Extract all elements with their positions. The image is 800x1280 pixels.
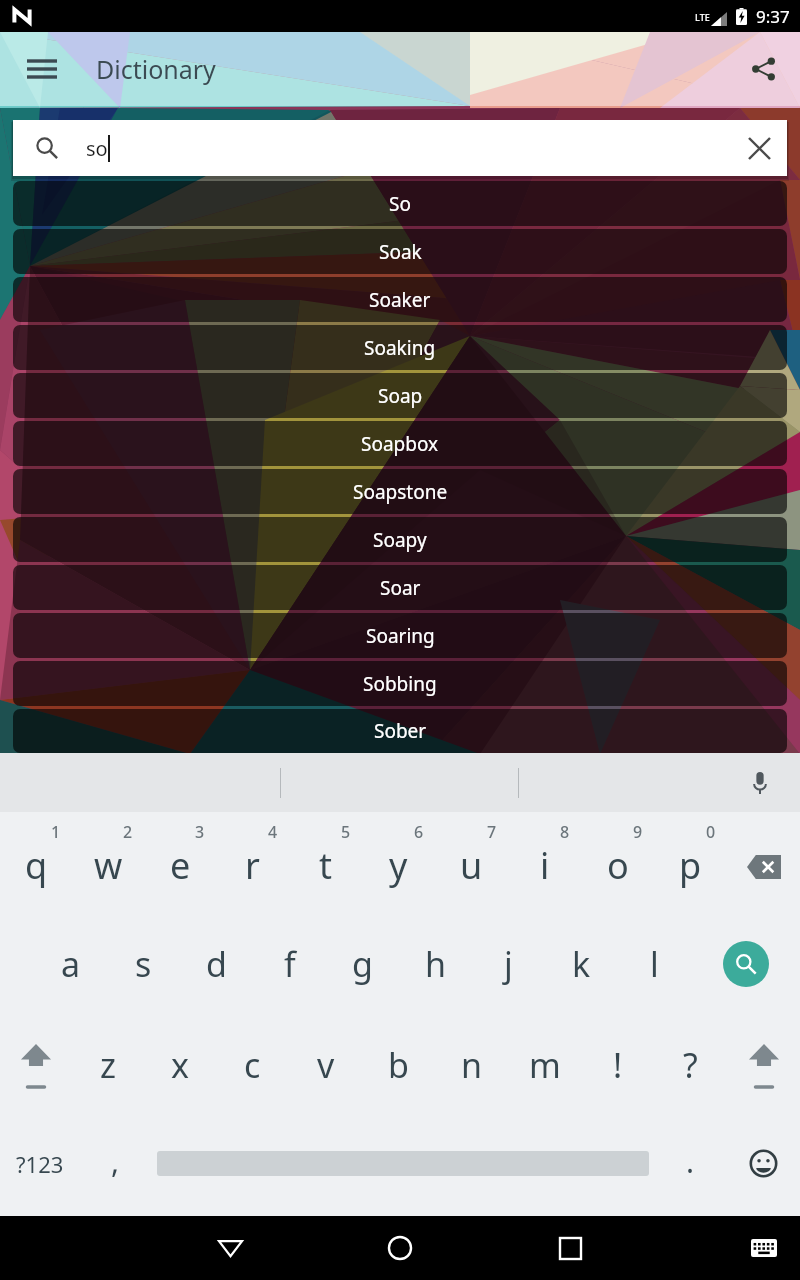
button[interactable]: So (13, 181, 787, 226)
staticText: v (317, 1042, 335, 1088)
staticText: t (319, 841, 332, 890)
staticText: j (504, 941, 513, 987)
staticText: 9 (633, 821, 643, 843)
button[interactable]: Clear (731, 120, 787, 176)
button[interactable]: Sobbing (13, 661, 787, 706)
staticText: , (111, 1141, 120, 1182)
button[interactable]: Search (691, 913, 800, 1014)
button[interactable]: Soapstone (13, 469, 787, 514)
button[interactable]: Soar (13, 565, 787, 610)
button[interactable]: Soap (13, 373, 787, 418)
staticText: a (61, 941, 81, 987)
button[interactable]: Soaking (13, 325, 787, 370)
button[interactable]: v (289, 1014, 362, 1115)
button[interactable]: 4 (216, 812, 289, 913)
staticText: LTE (695, 11, 710, 23)
button[interactable]: d (180, 913, 253, 1014)
staticText: 8 (560, 821, 570, 843)
button[interactable]: Shift (727, 1014, 800, 1115)
button[interactable]: Soaker (13, 277, 787, 322)
button[interactable]: ? (654, 1014, 727, 1115)
button[interactable]: Soak (13, 229, 787, 274)
staticText: Soapy (373, 527, 427, 553)
staticText: f (284, 941, 296, 987)
staticText: k (572, 941, 591, 987)
button[interactable]: n (435, 1014, 508, 1115)
button[interactable]: 0 (654, 812, 727, 913)
staticText: u (460, 841, 483, 890)
button[interactable]: 1 (0, 812, 72, 913)
staticText: 1 (51, 821, 61, 843)
button[interactable]: , (79, 1115, 152, 1216)
button[interactable]: 3 (144, 812, 216, 913)
button[interactable]: Emoji (727, 1115, 800, 1216)
staticText: y (389, 841, 408, 890)
button[interactable]: Back (198, 1216, 262, 1280)
staticText: b (388, 1042, 409, 1088)
button[interactable]: h (399, 913, 472, 1014)
button[interactable]: b (362, 1014, 435, 1115)
staticText: 2 (123, 821, 133, 843)
staticText: 9:37 (756, 5, 790, 28)
button[interactable]: 9 (581, 812, 654, 913)
button[interactable]: Space (152, 1115, 654, 1216)
button[interactable]: Shift (0, 1014, 72, 1115)
button[interactable]: z (72, 1014, 144, 1115)
staticText: ? (683, 1042, 698, 1088)
staticText: 7 (487, 821, 497, 843)
button[interactable]: a (35, 913, 107, 1014)
button[interactable]: ! (581, 1014, 654, 1115)
staticText: Soapbox (361, 431, 439, 457)
button[interactable]: f (253, 913, 326, 1014)
button[interactable]: 8 (508, 812, 581, 913)
button[interactable]: . (654, 1115, 727, 1216)
staticText: So (389, 191, 411, 217)
button[interactable]: ?123 (0, 1115, 79, 1216)
staticText: Sobbing (363, 671, 437, 697)
button[interactable]: Soaring (13, 613, 787, 658)
button[interactable]: g (326, 913, 399, 1014)
staticText: ! (613, 1042, 623, 1088)
staticText: i (540, 841, 550, 890)
staticText: s (135, 941, 152, 987)
button[interactable]: m (508, 1014, 581, 1115)
button[interactable]: 5 (289, 812, 362, 913)
staticText: 0 (706, 821, 716, 843)
button[interactable]: Voice input (736, 759, 784, 807)
button[interactable]: Backspace (727, 812, 800, 913)
button[interactable]: Home (368, 1216, 432, 1280)
button[interactable]: Sober (13, 709, 787, 753)
staticText: Dictionary (96, 52, 216, 86)
button[interactable]: x (144, 1014, 216, 1115)
staticText: Sober (374, 718, 427, 744)
staticText: p (679, 841, 702, 890)
button[interactable]: Menu (5, 32, 79, 106)
staticText: Soak (379, 239, 422, 265)
button[interactable]: j (472, 913, 545, 1014)
button[interactable]: k (545, 913, 618, 1014)
button[interactable]: Soapy (13, 517, 787, 562)
staticText: Soaring (366, 623, 435, 649)
button[interactable]: s (107, 913, 180, 1014)
button[interactable]: 6 (362, 812, 435, 913)
button[interactable]: Share (726, 32, 800, 106)
staticText: z (100, 1042, 116, 1088)
staticText: . (686, 1141, 695, 1182)
button[interactable]: Keyboard (740, 1224, 788, 1272)
button[interactable]: Soapbox (13, 421, 787, 466)
staticText: c (244, 1042, 261, 1088)
staticText: Soaker (369, 287, 431, 313)
staticText: 6 (414, 821, 424, 843)
button[interactable]: 2 (72, 812, 144, 913)
staticText: x (171, 1042, 189, 1088)
staticText: r (245, 841, 260, 890)
staticText: m (529, 1042, 561, 1088)
staticText: 3 (195, 821, 205, 843)
button[interactable]: c (216, 1014, 289, 1115)
staticText: Soar (380, 575, 421, 601)
staticText: g (352, 941, 373, 987)
button[interactable]: 7 (435, 812, 508, 913)
button[interactable]: l (618, 913, 691, 1014)
button[interactable]: Recents (538, 1216, 602, 1280)
staticText: q (25, 841, 48, 890)
